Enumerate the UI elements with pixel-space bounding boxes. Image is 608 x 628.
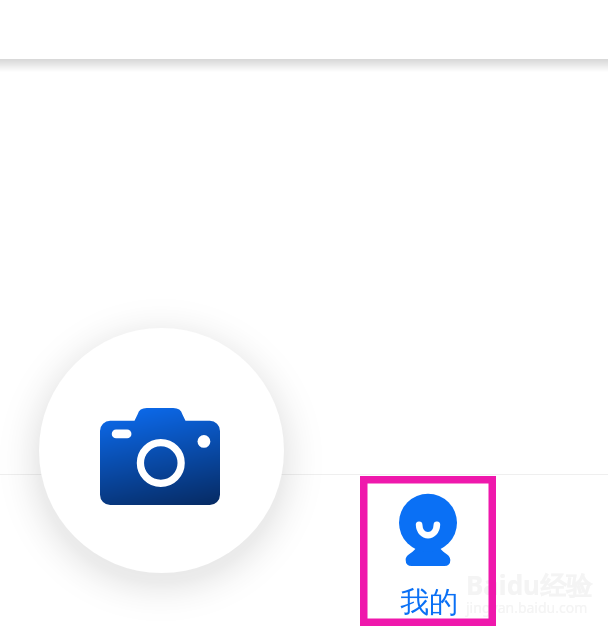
staticText: jingyan.baidu.com — [466, 598, 588, 617]
staticText: Baidu经验 — [466, 567, 592, 603]
button[interactable]: 我的 — [360, 476, 496, 626]
staticText: 我的 — [400, 584, 458, 621]
button[interactable]: Camera — [39, 328, 284, 573]
